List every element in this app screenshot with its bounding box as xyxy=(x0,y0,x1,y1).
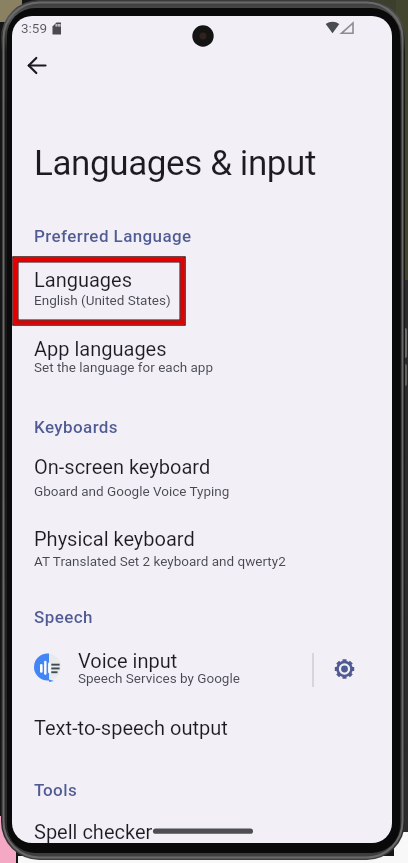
staticText: Languages & input xyxy=(34,143,317,184)
staticText: Speech xyxy=(34,607,93,627)
staticText: Tools xyxy=(34,780,78,800)
button[interactable] xyxy=(317,645,373,693)
staticText: Voice input xyxy=(78,649,178,672)
button[interactable] xyxy=(12,813,392,843)
button[interactable] xyxy=(12,329,392,389)
button[interactable] xyxy=(12,257,392,325)
staticText: 3:59 xyxy=(21,20,48,36)
staticText: AT Translated Set 2 keyboard and qwerty2 xyxy=(34,553,286,569)
staticText: Gboard and Google Voice Typing xyxy=(34,483,230,499)
staticText: Speech Services by Google xyxy=(78,670,240,686)
staticText: Preferred Language xyxy=(34,226,192,246)
staticText: Keyboards xyxy=(34,417,119,437)
button[interactable] xyxy=(12,709,392,757)
staticText: Spell checker xyxy=(34,820,153,843)
button[interactable] xyxy=(13,41,61,89)
staticText: Set the language for each app xyxy=(34,359,214,375)
staticText: Text-to-speech output xyxy=(34,716,228,739)
staticText: On-screen keyboard xyxy=(34,455,211,478)
staticText: English (United States) xyxy=(34,292,171,308)
button[interactable] xyxy=(12,519,392,579)
staticText: App languages xyxy=(34,337,167,360)
staticText: Physical keyboard xyxy=(34,527,195,550)
button[interactable] xyxy=(12,447,392,507)
button[interactable] xyxy=(12,640,312,702)
staticText: Languages xyxy=(34,268,132,291)
